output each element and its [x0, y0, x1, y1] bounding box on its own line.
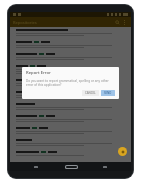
button[interactable]: [12, 89, 129, 101]
button[interactable]: Back: [31, 162, 41, 171]
button[interactable]: [12, 125, 129, 137]
staticText: CANCEL: [85, 91, 96, 95]
button[interactable]: [12, 27, 129, 39]
button[interactable]: Home: [63, 162, 79, 171]
button[interactable]: SEND: [101, 90, 115, 96]
button[interactable]: Add repository: [118, 147, 127, 156]
button[interactable]: [12, 77, 129, 89]
button[interactable]: [12, 113, 129, 125]
button[interactable]: [12, 39, 129, 51]
button[interactable]: [12, 51, 129, 63]
button[interactable]: [12, 63, 129, 77]
button[interactable]: [12, 149, 129, 159]
button[interactable]: Recents: [100, 162, 110, 171]
staticText: Report Error: [26, 70, 51, 76]
button[interactable]: More options: [121, 19, 128, 26]
button[interactable]: [12, 137, 129, 149]
staticText: Repositories: [13, 20, 37, 25]
button[interactable]: Search: [113, 18, 121, 26]
button[interactable]: CANCEL: [82, 90, 99, 96]
staticText: Do you want to report grammatical, spell…: [26, 79, 115, 87]
staticText: SEND: [104, 91, 112, 95]
button[interactable]: [12, 101, 129, 113]
